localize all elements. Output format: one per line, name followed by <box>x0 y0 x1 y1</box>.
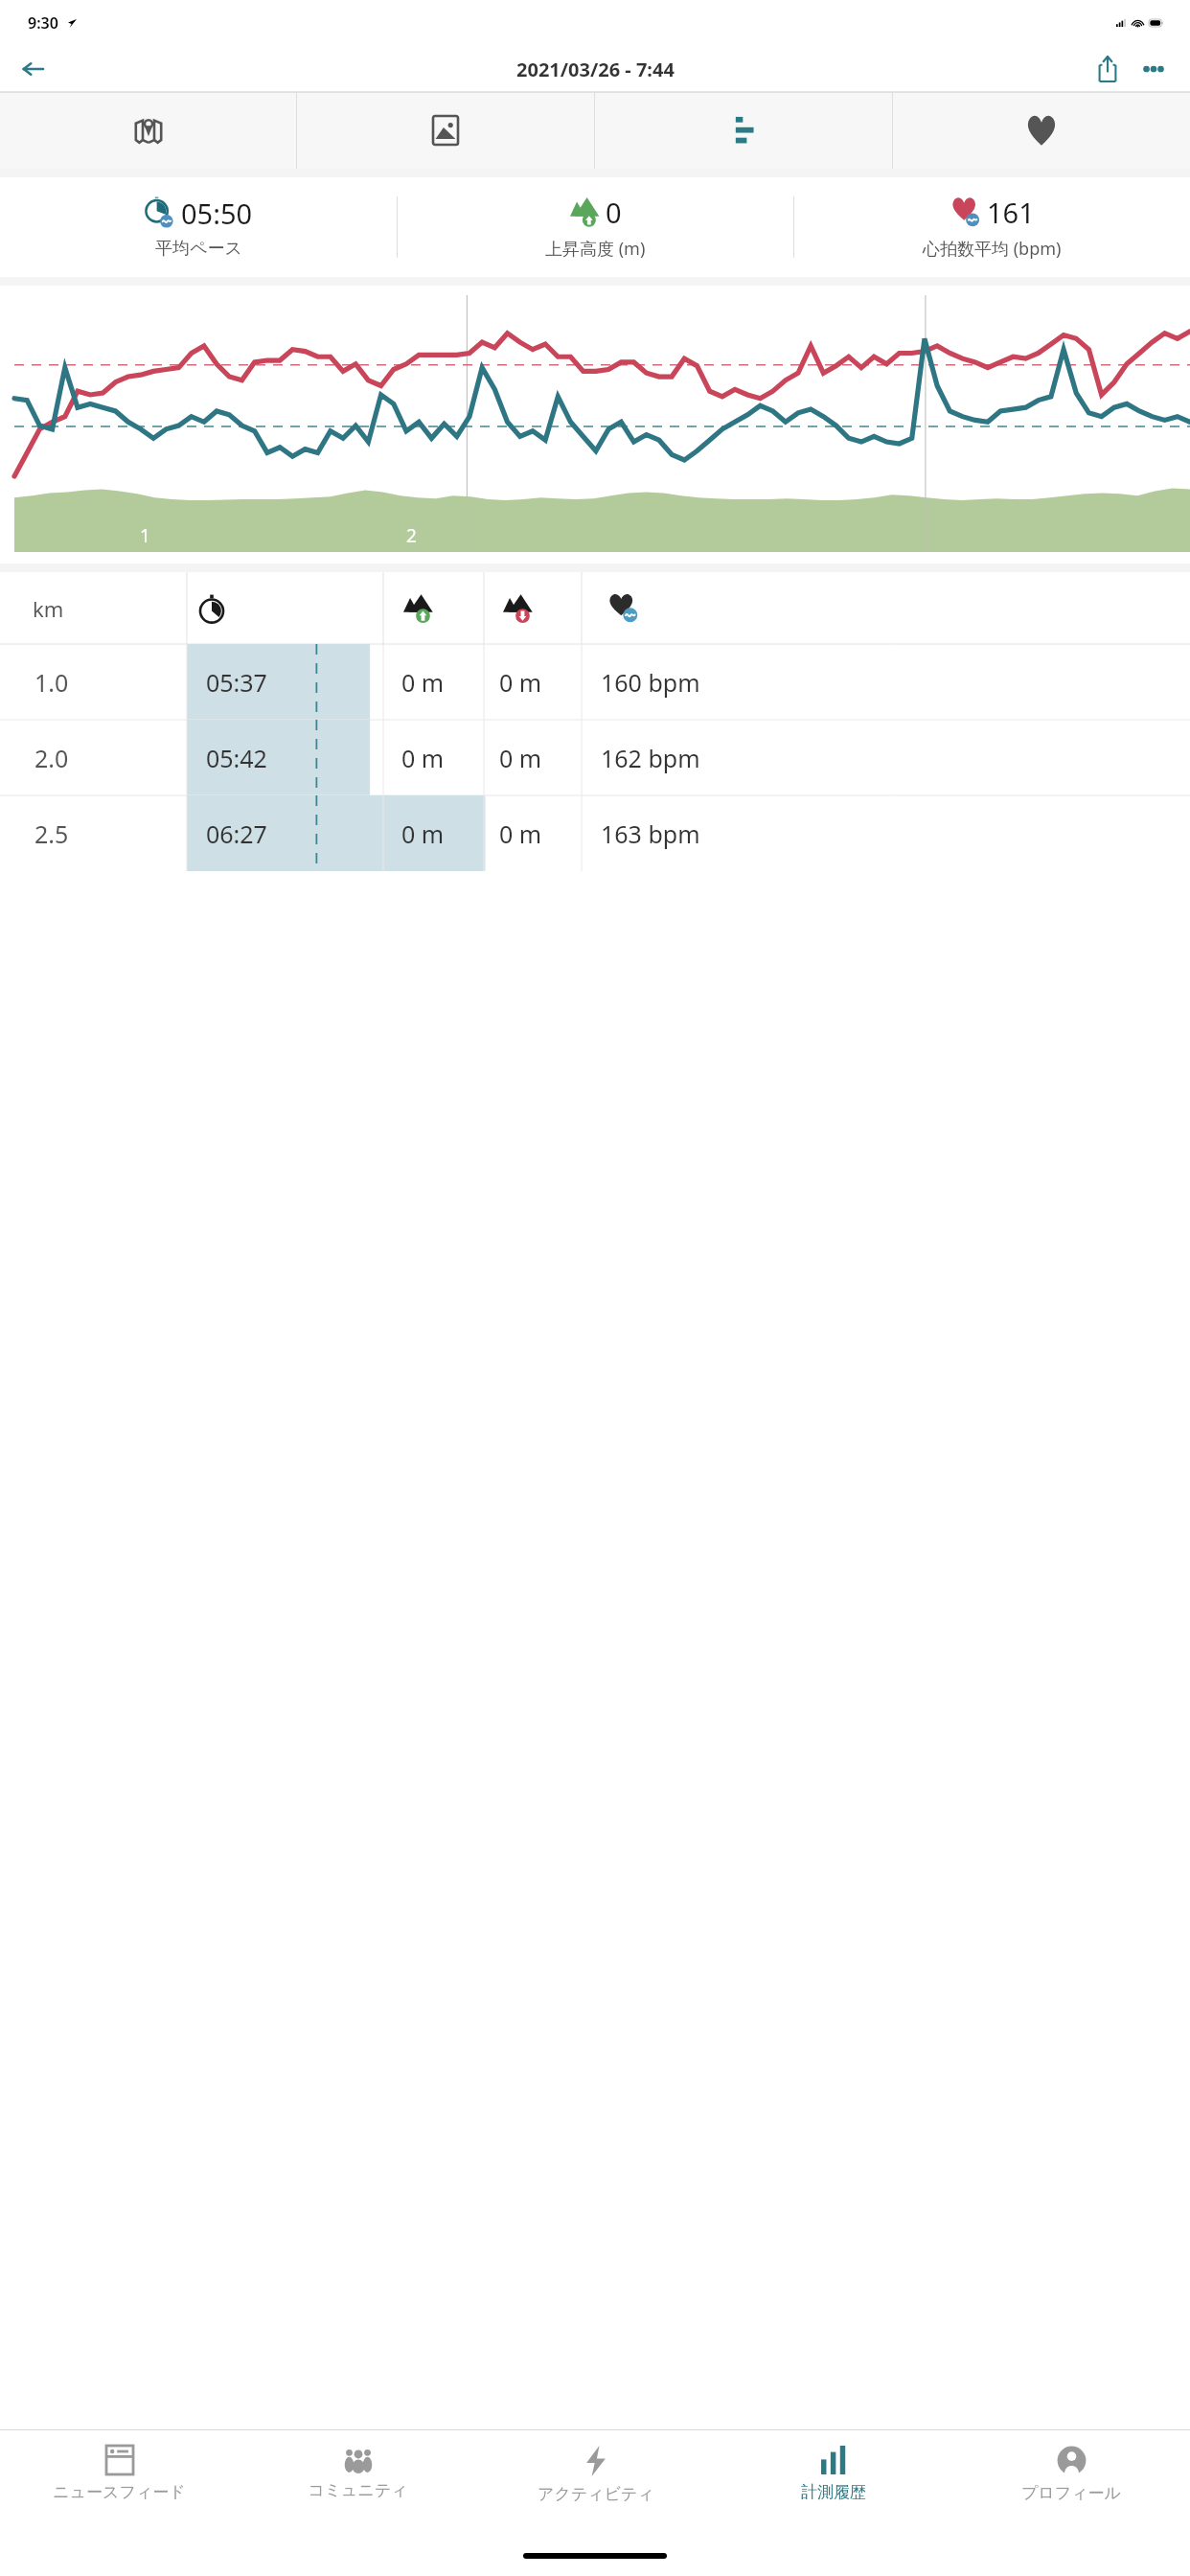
staticText: 05:50 <box>181 195 253 232</box>
button[interactable]: Photos <box>297 92 594 169</box>
staticText: 0 m <box>401 742 445 774</box>
button[interactable]: Statistics <box>595 92 892 169</box>
staticText: 0 m <box>499 666 542 699</box>
staticText: 2.0 <box>34 742 69 774</box>
staticText: 1 <box>140 523 150 548</box>
staticText: 06:27 <box>206 817 267 850</box>
button[interactable]: Back <box>10 46 56 92</box>
staticText: 心拍数平均 (bpm) <box>923 237 1062 261</box>
staticText: 上昇高度 (m) <box>545 237 646 261</box>
staticText: km <box>33 594 64 623</box>
staticText: 160 bpm <box>601 666 700 699</box>
staticText: 2021/03/26 - 7:44 <box>516 57 675 82</box>
staticText: 2.5 <box>34 817 69 850</box>
button[interactable]: 161 <box>794 177 1190 277</box>
button[interactable]: 計測履歴 <box>715 2430 952 2543</box>
button[interactable]: 0 <box>398 177 793 277</box>
staticText: 計測履歴 <box>801 2482 866 2502</box>
staticText: 0 m <box>499 742 542 774</box>
staticText: 9:30 <box>28 12 58 34</box>
staticText: ニュースフィード <box>53 2482 186 2502</box>
button[interactable]: More options <box>1131 46 1177 92</box>
staticText: プロフィール <box>1021 2483 1121 2503</box>
button[interactable]: Map <box>0 92 296 169</box>
staticText: 1.0 <box>34 666 69 699</box>
button[interactable]: ニュースフィード <box>0 2430 239 2543</box>
button[interactable]: 2.0 <box>0 720 1190 795</box>
staticText: 161 <box>987 194 1035 231</box>
staticText: 163 bpm <box>601 817 700 850</box>
button[interactable]: アクティビティ <box>477 2430 715 2543</box>
staticText: アクティビティ <box>538 2484 654 2504</box>
button[interactable]: 1.0 <box>0 644 1190 720</box>
button[interactable]: プロフィール <box>952 2430 1190 2543</box>
staticText: 05:37 <box>206 666 267 699</box>
staticText: 162 bpm <box>601 742 700 774</box>
button[interactable]: Heart rate <box>893 92 1190 169</box>
button[interactable]: コミュニティ <box>239 2430 477 2543</box>
staticText: 0 m <box>401 817 445 850</box>
staticText: 0 <box>606 194 622 231</box>
button[interactable]: Share <box>1085 46 1131 92</box>
staticText: 0 m <box>499 817 542 850</box>
staticText: コミュニティ <box>308 2480 408 2500</box>
staticText: 0 m <box>401 666 445 699</box>
staticText: 平均ペース <box>155 238 242 260</box>
button[interactable]: 05:50 <box>0 177 397 277</box>
button[interactable]: 1 <box>0 286 1190 563</box>
staticText: 2 <box>406 523 417 548</box>
button[interactable]: 2.5 <box>0 795 1190 871</box>
staticText: 05:42 <box>206 742 267 774</box>
